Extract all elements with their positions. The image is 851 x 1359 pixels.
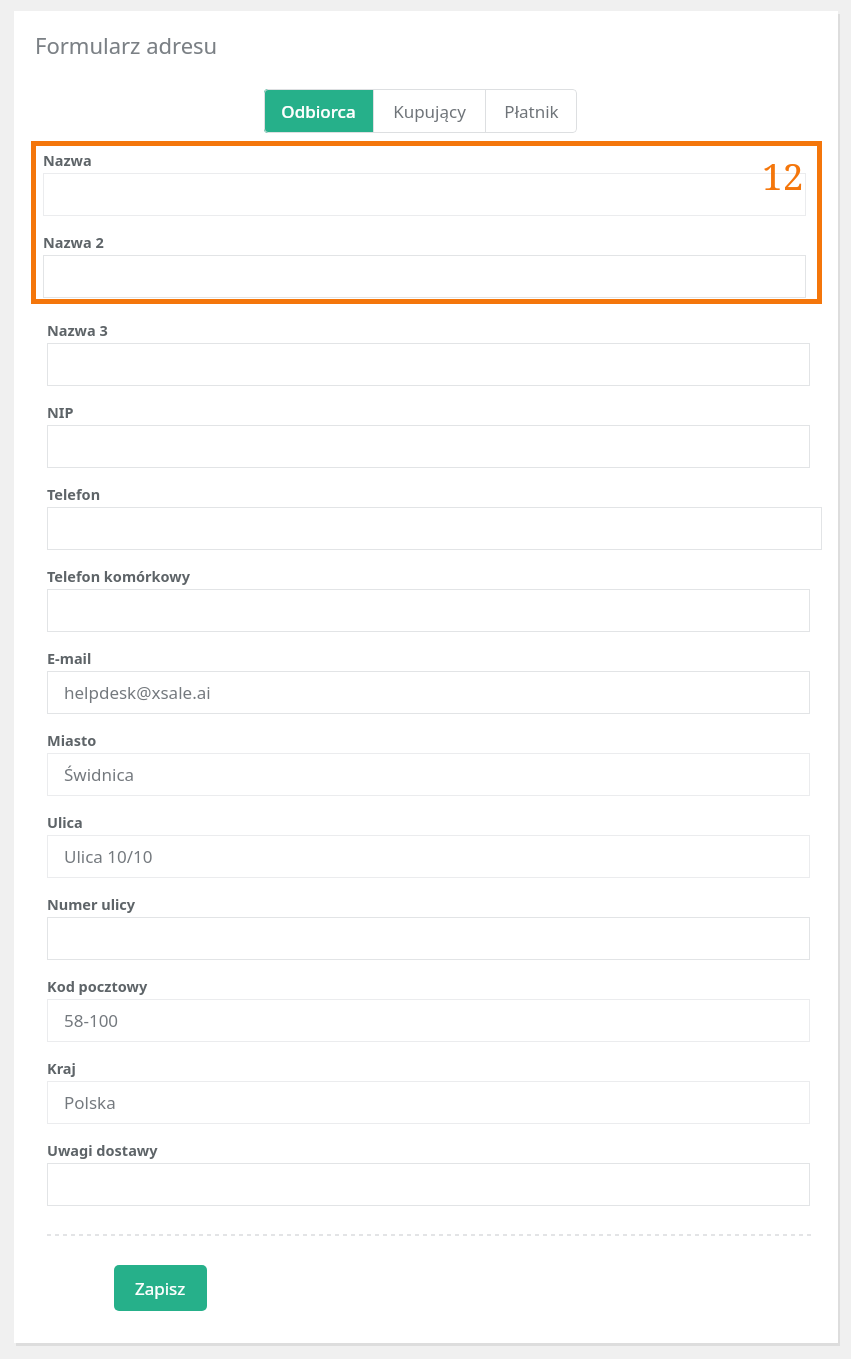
button[interactable]: Kupujący xyxy=(374,89,485,133)
staticText: Uwagi dostawy xyxy=(47,1140,158,1160)
button[interactable]: Świdnica xyxy=(47,753,810,796)
button[interactable]: helpdesk@xsale.ai xyxy=(47,671,810,714)
button[interactable] xyxy=(43,173,806,216)
staticText: Kupujący xyxy=(393,100,466,123)
button[interactable]: Płatnik xyxy=(486,89,577,133)
button[interactable] xyxy=(43,255,806,298)
staticText: 58-100 xyxy=(64,1009,119,1032)
staticText: Miasto xyxy=(47,730,97,750)
button[interactable]: Ulica 10/10 xyxy=(47,835,810,878)
staticText: Kraj xyxy=(47,1058,76,1078)
button[interactable] xyxy=(47,343,810,386)
staticText: Nazwa xyxy=(43,150,92,170)
button[interactable] xyxy=(47,917,810,960)
staticText: Ulica xyxy=(47,812,83,832)
staticText: Odbiorca xyxy=(281,100,356,123)
button[interactable] xyxy=(47,507,822,550)
staticText: 12 xyxy=(762,150,804,200)
staticText: Kod pocztowy xyxy=(47,976,148,996)
button[interactable] xyxy=(47,1163,810,1206)
staticText: Zapisz xyxy=(135,1277,186,1300)
staticText: Ulica 10/10 xyxy=(64,845,153,868)
staticText: Płatnik xyxy=(504,100,559,123)
staticText: Telefon komórkowy xyxy=(47,566,191,586)
staticText: Formularz adresu xyxy=(35,30,218,60)
staticText: NIP xyxy=(47,402,74,422)
staticText: E-mail xyxy=(47,648,92,668)
button[interactable]: 58-100 xyxy=(47,999,810,1042)
button[interactable] xyxy=(47,589,810,632)
staticText: Telefon xyxy=(47,484,101,504)
staticText: Nazwa 2 xyxy=(43,232,104,252)
button[interactable]: Polska xyxy=(47,1081,810,1124)
staticText: Numer ulicy xyxy=(47,894,136,914)
staticText: Nazwa 3 xyxy=(47,320,108,340)
button[interactable] xyxy=(47,425,810,468)
staticText: helpdesk@xsale.ai xyxy=(64,681,211,704)
button[interactable]: Zapisz xyxy=(114,1265,207,1311)
staticText: Świdnica xyxy=(64,763,135,786)
button[interactable]: Odbiorca xyxy=(264,89,373,133)
staticText: Polska xyxy=(64,1091,116,1114)
